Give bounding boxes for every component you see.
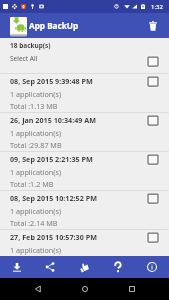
staticText: 18 backup(s) xyxy=(10,41,51,50)
button[interactable]: 08, Sep 2015 9:39:48 PM xyxy=(0,74,169,112)
staticText: Total :1.13 MB xyxy=(10,101,58,111)
button[interactable]: 26, Jan 2015 10:34:49 AM xyxy=(0,113,169,151)
button[interactable]: Select backup xyxy=(143,149,163,169)
staticText: Total :2.14 MB xyxy=(10,218,58,228)
staticText: 1 application(s) xyxy=(10,89,62,99)
button[interactable]: Select all xyxy=(143,51,163,71)
staticText: 08, Sep 2015 9:39:48 PM xyxy=(10,76,93,86)
staticText: 1 application(s) xyxy=(10,245,62,255)
staticText: 08, Sep 2015 10:12:52 PM xyxy=(10,193,97,203)
staticText: 27, Feb 2015 10:57:30 PM xyxy=(10,232,97,242)
button[interactable]: Select All xyxy=(10,54,38,63)
staticText: 1:32 xyxy=(151,3,163,11)
button[interactable]: Select backup xyxy=(143,110,163,130)
staticText: 1 application(s) xyxy=(10,167,62,177)
button[interactable]: Like xyxy=(67,256,101,278)
button[interactable]: Delete xyxy=(142,15,164,37)
staticText: 1 application(s) xyxy=(10,206,62,216)
button[interactable]: Info xyxy=(135,256,169,278)
button[interactable]: 08, Sep 2015 10:12:52 PM xyxy=(0,191,169,229)
button[interactable]: Download xyxy=(0,256,33,278)
button[interactable]: Select backup xyxy=(143,188,163,208)
staticText: App BackUp xyxy=(29,20,79,31)
button[interactable]: Recents xyxy=(108,278,155,300)
staticText: Total :1.2 MB xyxy=(10,179,54,189)
button[interactable]: Home xyxy=(61,278,108,300)
staticText: Select All xyxy=(10,54,38,63)
button[interactable]: 27, Feb 2015 10:57:30 PM xyxy=(0,230,169,256)
button[interactable]: 09, Sep 2015 2:21:35 PM xyxy=(0,152,169,190)
button[interactable]: Back xyxy=(14,278,61,300)
staticText: 09, Sep 2015 2:21:35 PM xyxy=(10,154,93,164)
staticText: Total :29.87 MB xyxy=(10,140,62,150)
button[interactable]: Help xyxy=(101,256,135,278)
button[interactable]: Share xyxy=(33,256,67,278)
staticText: 1 application(s) xyxy=(10,128,62,138)
button[interactable]: Select backup xyxy=(143,71,163,91)
button[interactable]: Select backup xyxy=(143,227,163,247)
staticText: 26, Jan 2015 10:34:49 AM xyxy=(10,115,97,125)
